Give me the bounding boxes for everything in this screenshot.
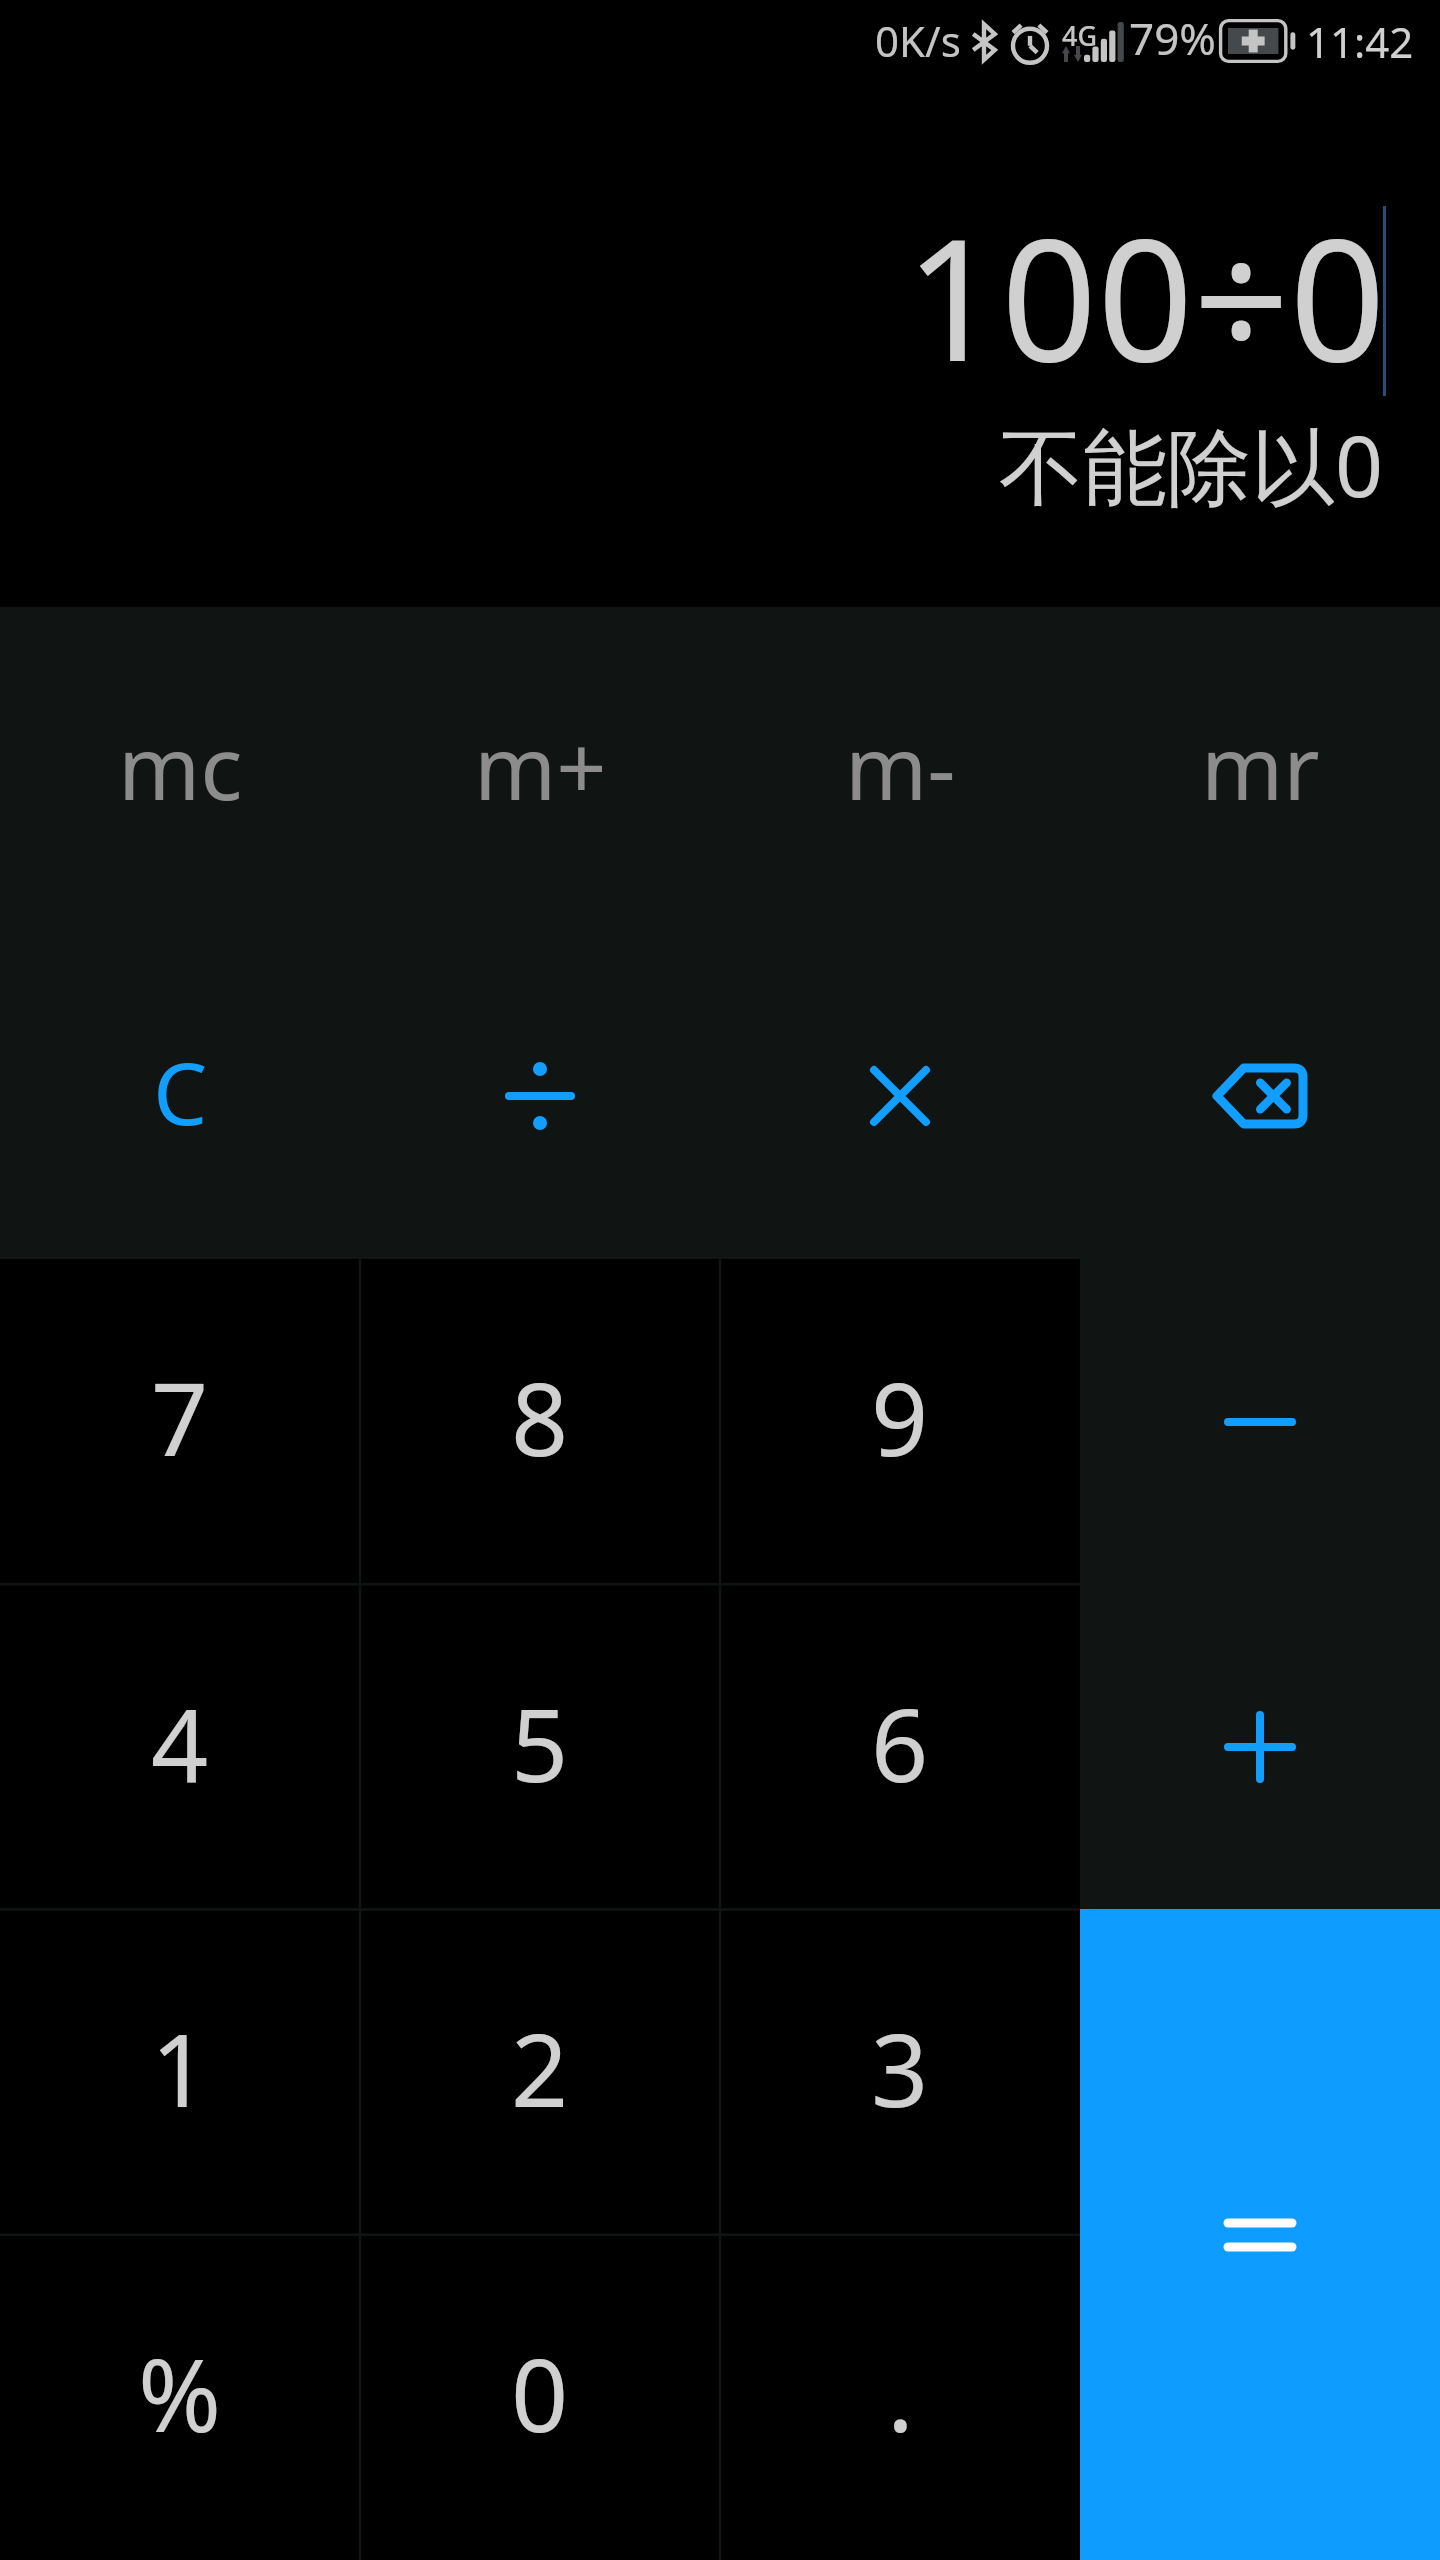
button[interactable]: m- xyxy=(720,607,1080,933)
staticText: 11:42 xyxy=(1306,13,1414,70)
staticText: 5 xyxy=(511,1675,569,1811)
button[interactable]: Minus xyxy=(1080,1259,1440,1584)
button[interactable]: 4 xyxy=(0,1585,360,1910)
button[interactable]: % xyxy=(0,2235,360,2560)
staticText: 6 xyxy=(871,1675,929,1811)
button[interactable]: Divide xyxy=(360,933,720,1259)
staticText: mr xyxy=(1201,706,1320,826)
staticText: 1 xyxy=(151,2000,209,2136)
button[interactable]: 7 xyxy=(0,1259,360,1585)
button[interactable]: 2 xyxy=(360,1910,720,2235)
button[interactable]: Plus xyxy=(1080,1584,1440,1909)
button[interactable]: 1 xyxy=(0,1910,360,2235)
button[interactable]: 5 xyxy=(360,1585,720,1910)
staticText: 4 xyxy=(151,1675,209,1811)
staticText: 100÷0 xyxy=(905,181,1386,410)
staticText: 4G xyxy=(1062,17,1098,54)
staticText: 0 xyxy=(511,2325,569,2461)
button[interactable]: 9 xyxy=(720,1259,1080,1585)
button[interactable]: mc xyxy=(0,607,360,933)
staticText: 9 xyxy=(871,1349,929,1485)
button[interactable]: mr xyxy=(1080,607,1440,933)
staticText: 8 xyxy=(511,1349,569,1485)
staticText: m- xyxy=(845,706,956,826)
staticText: 0K/s xyxy=(875,12,961,69)
staticText: 79% xyxy=(1129,8,1216,68)
button[interactable]: 8 xyxy=(360,1259,720,1585)
staticText: m+ xyxy=(474,706,607,826)
button[interactable]: Multiply xyxy=(720,933,1080,1259)
button[interactable]: Backspace xyxy=(1080,933,1440,1259)
staticText: 3 xyxy=(871,2000,929,2136)
button[interactable]: 3 xyxy=(720,1910,1080,2235)
button[interactable]: . xyxy=(720,2235,1080,2560)
button[interactable]: C xyxy=(0,933,360,1259)
staticText: % xyxy=(138,2325,222,2461)
staticText: C xyxy=(153,1033,208,1150)
button[interactable]: m+ xyxy=(360,607,720,933)
staticText: 7 xyxy=(151,1349,209,1485)
staticText: 2 xyxy=(511,2000,569,2136)
staticText: . xyxy=(887,2325,914,2461)
button[interactable]: 6 xyxy=(720,1585,1080,1910)
staticText: mc xyxy=(118,706,243,826)
staticText: 不能除以0 xyxy=(999,407,1384,522)
button[interactable]: 0 xyxy=(360,2235,720,2560)
button[interactable]: Equals xyxy=(1080,1909,1440,2560)
